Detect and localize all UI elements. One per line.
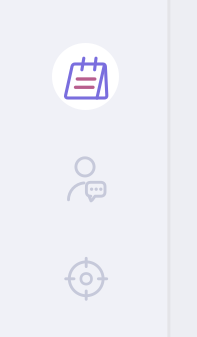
button[interactable]: Notes xyxy=(0,0,197,337)
button[interactable]: Targets xyxy=(0,0,197,337)
button[interactable]: Contacts xyxy=(0,0,197,337)
